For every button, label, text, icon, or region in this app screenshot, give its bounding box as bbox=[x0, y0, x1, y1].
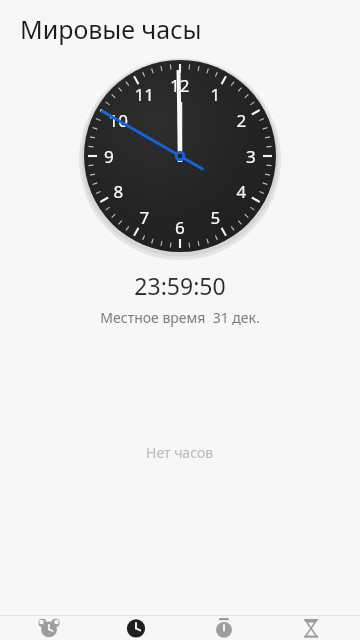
staticText: Местное время 31 дек. bbox=[100, 308, 260, 327]
staticText: Мировые часы bbox=[20, 12, 202, 46]
button[interactable]: Alarm bbox=[10, 616, 88, 640]
button[interactable]: Timer bbox=[272, 616, 350, 640]
staticText: 23:59:50 bbox=[134, 270, 226, 301]
button[interactable]: World clock bbox=[97, 616, 175, 640]
button[interactable]: Stopwatch bbox=[185, 616, 263, 640]
staticText: Нет часов bbox=[146, 443, 214, 462]
